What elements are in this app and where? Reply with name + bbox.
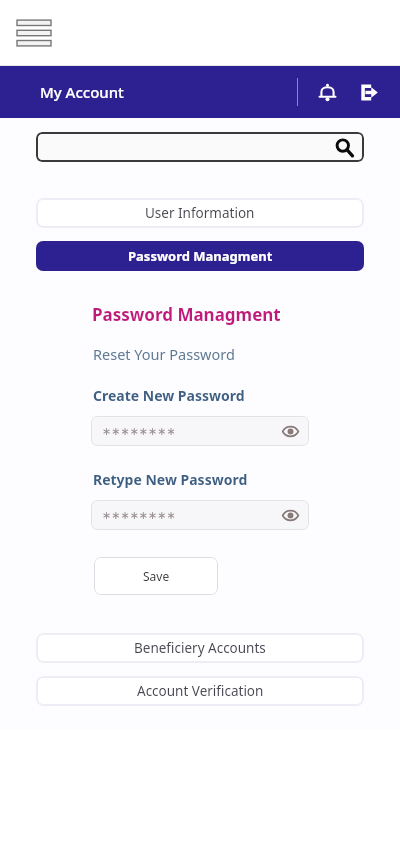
staticText: Password Managment <box>92 303 281 326</box>
button[interactable]: Account Verification <box>36 676 364 706</box>
button[interactable]: Notifications <box>312 77 342 107</box>
button[interactable]: Menu <box>8 7 60 59</box>
button[interactable]: Log out <box>352 77 382 107</box>
other: Search <box>332 135 356 159</box>
button[interactable]: User Information <box>36 198 364 228</box>
staticText: Password Managment <box>128 247 273 265</box>
button[interactable]: Show password <box>279 504 301 526</box>
staticText: User Information <box>145 204 255 222</box>
button[interactable]: ∗∗∗∗∗∗∗∗ <box>91 416 309 446</box>
staticText: Reset Your Password <box>93 344 235 364</box>
button[interactable]: Search <box>36 132 364 162</box>
staticText: ∗∗∗∗∗∗∗∗ <box>102 509 176 522</box>
button[interactable]: Password Managment <box>36 241 364 271</box>
staticText: Create New Password <box>93 386 245 405</box>
staticText: ∗∗∗∗∗∗∗∗ <box>102 425 176 438</box>
staticText: Retype New Password <box>93 470 248 489</box>
button[interactable]: Beneficiery Accounts <box>36 633 364 663</box>
button[interactable]: Show password <box>279 420 301 442</box>
staticText: Beneficiery Accounts <box>134 639 266 657</box>
staticText: Save <box>143 568 170 584</box>
button[interactable]: ∗∗∗∗∗∗∗∗ <box>91 500 309 530</box>
staticText: Account Verification <box>137 682 264 700</box>
staticText: My Account <box>40 82 124 102</box>
button[interactable]: Save <box>94 557 218 595</box>
